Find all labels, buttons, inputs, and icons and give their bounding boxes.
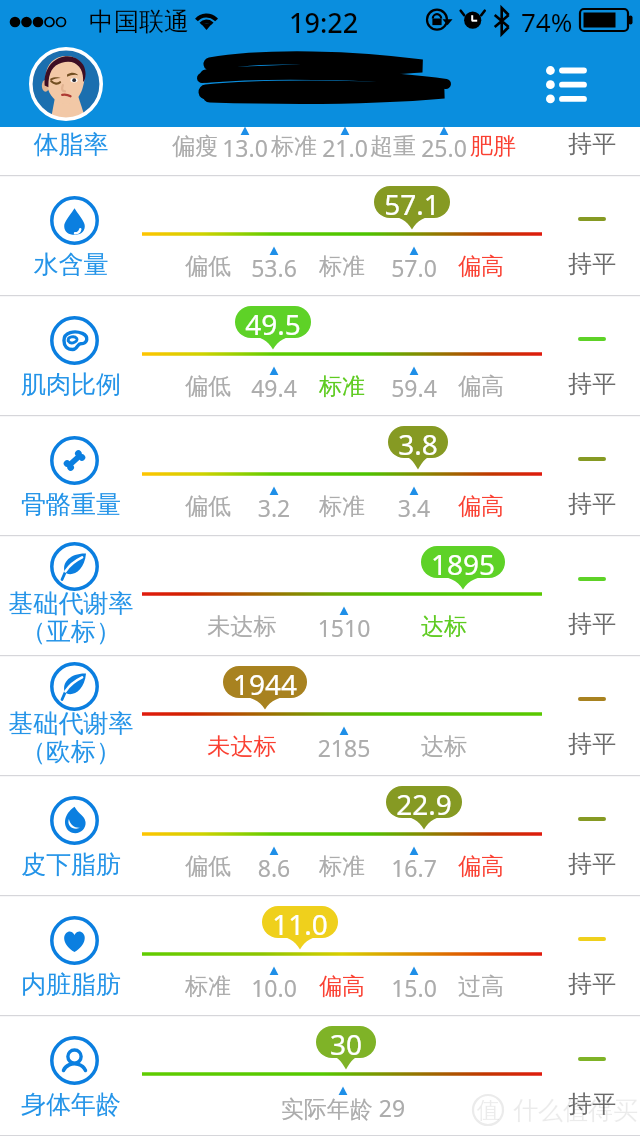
staticText: 中国联通 [89, 6, 189, 37]
staticText: 74% [521, 4, 573, 39]
staticText: 肌肉比例 [0, 369, 142, 400]
staticText: 过高 [401, 972, 561, 1001]
staticText: 实际年龄 29 [263, 1092, 423, 1123]
staticText: 骨骼重量 [0, 489, 142, 520]
staticText: 3.2 [194, 492, 354, 523]
button[interactable]: 基础代谢率 [0, 535, 640, 655]
staticText: 持平 [537, 129, 640, 159]
staticText: 53.6 [194, 252, 354, 283]
staticText: 基础代谢率 [0, 708, 142, 739]
staticText: 1944 [223, 665, 307, 703]
staticText: 标准 [262, 252, 422, 281]
staticText: 1895 [421, 545, 505, 583]
staticText: 57.1 [374, 185, 450, 223]
button[interactable]: 皮下脂肪 [0, 775, 640, 895]
staticText: 偏高 [401, 852, 561, 881]
button[interactable]: 内脏脂肪 [0, 895, 640, 1015]
staticText: 11.0 [262, 905, 338, 943]
staticText: 值 [475, 1096, 501, 1125]
staticText: 肥胖 [413, 132, 573, 161]
staticText: 达标 [364, 612, 524, 641]
staticText: 持平 [537, 489, 640, 519]
staticText: 基础代谢率 [0, 588, 142, 619]
button[interactable]: Menu [531, 49, 601, 119]
staticText: 57.0 [334, 252, 494, 283]
button[interactable]: 骨骼重量 [0, 415, 640, 535]
staticText: 19:22 [289, 4, 359, 41]
staticText: 3.4 [334, 492, 494, 523]
staticText: 持平 [537, 1089, 640, 1119]
staticText: 标准 [128, 972, 288, 1001]
staticText: 标准 [262, 852, 422, 881]
staticText: 持平 [537, 729, 640, 759]
staticText: 超重 [313, 132, 473, 161]
button[interactable]: 体脂率 [0, 55, 640, 175]
staticText: 13.0 [165, 132, 325, 163]
staticText: 15.0 [334, 972, 494, 1003]
staticText: 标准 [214, 132, 374, 161]
staticText: 什么值得买 [513, 1095, 638, 1126]
staticText: 偏高 [401, 492, 561, 521]
staticText: 偏低 [128, 372, 288, 401]
staticText: （亚标） [0, 616, 142, 647]
staticText: 内脏脂肪 [0, 969, 142, 1000]
button[interactable]: Profile [29, 47, 103, 121]
staticText: 3.8 [388, 425, 448, 463]
staticText: 未达标 [162, 612, 322, 641]
staticText: 持平 [537, 369, 640, 399]
staticText: 偏瘦 [115, 132, 275, 161]
staticText: 持平 [537, 849, 640, 879]
staticText: 59.4 [334, 372, 494, 403]
staticText: （欧标） [0, 736, 142, 767]
staticText: 偏高 [401, 372, 561, 401]
staticText: 16.7 [334, 852, 494, 883]
staticText: 达标 [364, 732, 524, 761]
staticText: 30 [316, 1025, 376, 1063]
staticText: 持平 [537, 249, 640, 279]
staticText: 持平 [537, 969, 640, 999]
button[interactable]: 基础代谢率 [0, 655, 640, 775]
staticText: 未达标 [162, 732, 322, 761]
staticText: 标准 [262, 492, 422, 521]
staticText: 偏高 [262, 972, 422, 1001]
staticText: 偏低 [128, 252, 288, 281]
staticText: 水含量 [0, 249, 142, 280]
staticText: 1510 [264, 612, 424, 643]
staticText: 2185 [264, 732, 424, 763]
staticText: 22.9 [386, 785, 462, 823]
button[interactable]: 肌肉比例 [0, 295, 640, 415]
staticText: 偏高 [401, 252, 561, 281]
staticText: 偏低 [128, 492, 288, 521]
staticText: 偏低 [128, 852, 288, 881]
staticText: 体脂率 [0, 129, 142, 160]
staticText: 身体年龄 [0, 1089, 142, 1120]
staticText: 皮下脂肪 [0, 849, 142, 880]
staticText: 10.0 [194, 972, 354, 1003]
staticText: 49.4 [194, 372, 354, 403]
staticText: 21.0 [265, 132, 425, 163]
staticText: 持平 [537, 609, 640, 639]
button[interactable]: 水含量 [0, 175, 640, 295]
staticText: 标准 [262, 372, 422, 401]
button[interactable]: 身体年龄 [0, 1015, 640, 1135]
staticText: 8.6 [194, 852, 354, 883]
staticText: 49.5 [235, 305, 311, 343]
staticText: 25.0 [364, 132, 524, 163]
